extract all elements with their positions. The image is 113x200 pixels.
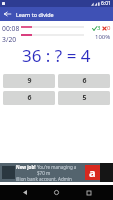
staticText: 6 [82,76,87,86]
button[interactable]: 6 [58,74,110,88]
staticText: illion bank account. Admin [16,176,72,182]
staticText: 100% [95,33,111,41]
staticText: New job! [16,164,37,170]
button[interactable]: Recent apps [81,185,96,200]
staticText: You're managing a $70 m [37,164,85,176]
staticText: 9 [27,76,32,86]
staticText: 36 : ? = 4 [22,44,91,67]
staticText: 00:08 [2,24,20,33]
button[interactable]: Home [49,185,64,200]
staticText: 6 [27,93,32,103]
staticText: 5 [82,93,87,103]
button[interactable]: Back [0,7,14,21]
button[interactable]: 9 [3,74,55,88]
staticText: 3 [97,24,101,32]
staticText: 0 [107,24,111,32]
button[interactable]: New job! [0,163,113,182]
button[interactable]: 5 [58,91,110,105]
button[interactable]: 6 [3,91,55,105]
staticText: Learn to divide [16,11,54,18]
staticText: a [89,165,96,180]
button[interactable]: Back [17,185,32,200]
staticText: 6:01 [101,0,111,7]
staticText: 3/20 [2,35,17,44]
